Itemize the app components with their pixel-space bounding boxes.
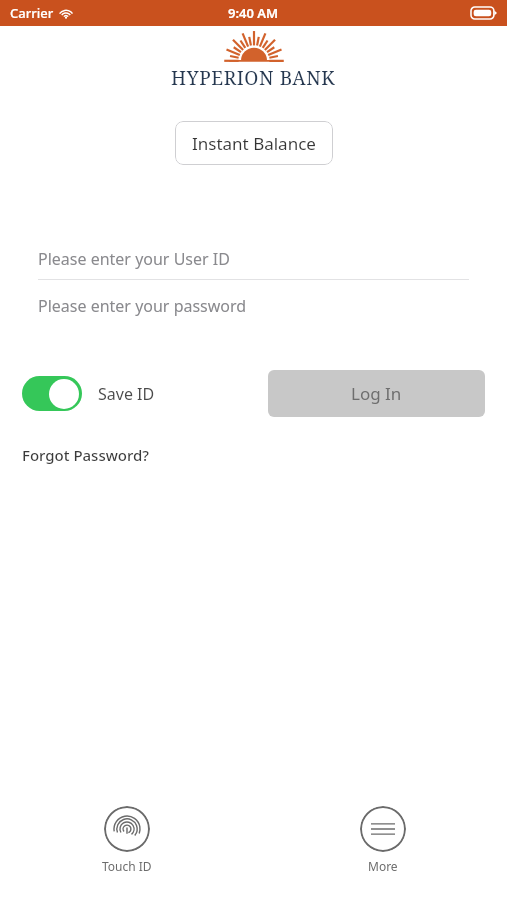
staticText: Instant Balance (192, 132, 316, 155)
staticText: HYPERION BANK (171, 65, 336, 91)
staticText: Log In (351, 382, 402, 405)
button[interactable]: Log In (268, 370, 485, 417)
staticText: Save ID (98, 383, 155, 405)
staticText: Touch ID (102, 858, 152, 874)
staticText: More (368, 858, 398, 874)
button[interactable]: Save ID (22, 376, 155, 411)
button[interactable]: More (356, 802, 410, 878)
button[interactable]: Instant Balance (175, 121, 333, 165)
button[interactable]: Please enter your User ID (0, 239, 507, 280)
staticText: Please enter your User ID (38, 248, 230, 270)
staticText: Please enter your password (38, 295, 247, 317)
staticText: Forgot Password? (22, 445, 150, 465)
staticText: 9:40 AM (228, 4, 279, 22)
button[interactable]: Touch ID (98, 802, 156, 878)
button[interactable]: Please enter your password (0, 286, 507, 326)
button[interactable]: Forgot Password? (22, 445, 150, 465)
staticText: Carrier (10, 4, 54, 22)
